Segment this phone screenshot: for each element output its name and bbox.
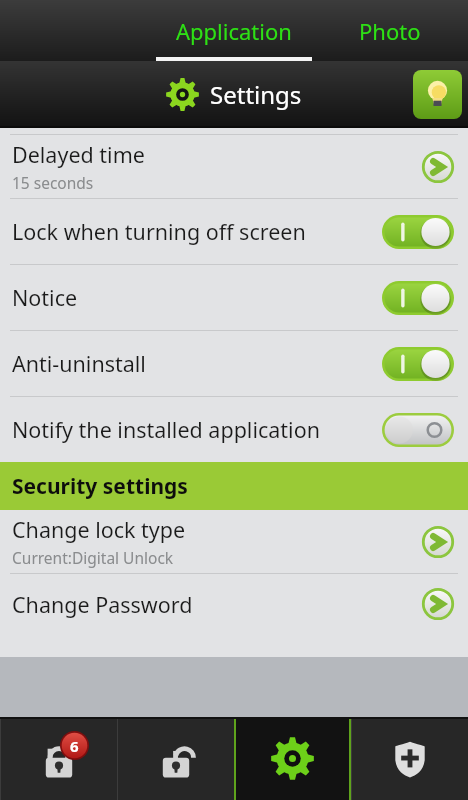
button[interactable]: Lock when turning off screen xyxy=(0,199,468,264)
staticText: Anti-uninstall xyxy=(12,349,146,378)
staticText: Notice xyxy=(12,283,78,312)
button[interactable]: Flashlight xyxy=(413,70,462,119)
staticText: Delayed time xyxy=(12,140,145,169)
button[interactable]: Open xyxy=(420,524,456,560)
button[interactable]: Delayed time xyxy=(0,135,468,198)
button[interactable]: Change Password xyxy=(0,574,468,634)
staticText: Application xyxy=(176,16,292,46)
staticText: 6 xyxy=(70,736,79,756)
button[interactable]: Anti-uninstall xyxy=(0,331,468,396)
button[interactable]: Unlocked apps xyxy=(117,717,234,800)
button[interactable]: Disabled xyxy=(380,411,456,449)
staticText: Change Password xyxy=(12,590,193,619)
button[interactable]: Open xyxy=(420,149,456,185)
button[interactable]: Protection xyxy=(351,717,468,800)
staticText: Current:Digital Unlock xyxy=(12,547,174,568)
staticText: Lock when turning off screen xyxy=(12,217,306,246)
button[interactable]: Change lock type xyxy=(0,510,468,573)
button[interactable]: Settings xyxy=(234,717,351,800)
staticText: Security settings xyxy=(12,472,188,501)
button[interactable]: Photo xyxy=(312,0,468,61)
button[interactable]: Locked apps xyxy=(0,717,117,800)
button[interactable]: Enabled xyxy=(380,279,456,317)
staticText: Settings xyxy=(210,78,302,111)
staticText: Photo xyxy=(359,16,421,46)
button[interactable]: Notice xyxy=(0,265,468,330)
button[interactable] xyxy=(0,0,156,61)
staticText: 15 seconds xyxy=(12,172,94,193)
button[interactable]: Enabled xyxy=(380,345,456,383)
button[interactable]: Notify the installed application xyxy=(0,397,468,462)
button[interactable]: Open xyxy=(420,586,456,622)
button[interactable]: Enabled xyxy=(380,213,456,251)
staticText: Notify the installed application xyxy=(12,415,320,444)
button[interactable]: Application xyxy=(156,0,312,61)
button[interactable]: Security settings xyxy=(0,462,468,510)
staticText: Change lock type xyxy=(12,515,186,544)
